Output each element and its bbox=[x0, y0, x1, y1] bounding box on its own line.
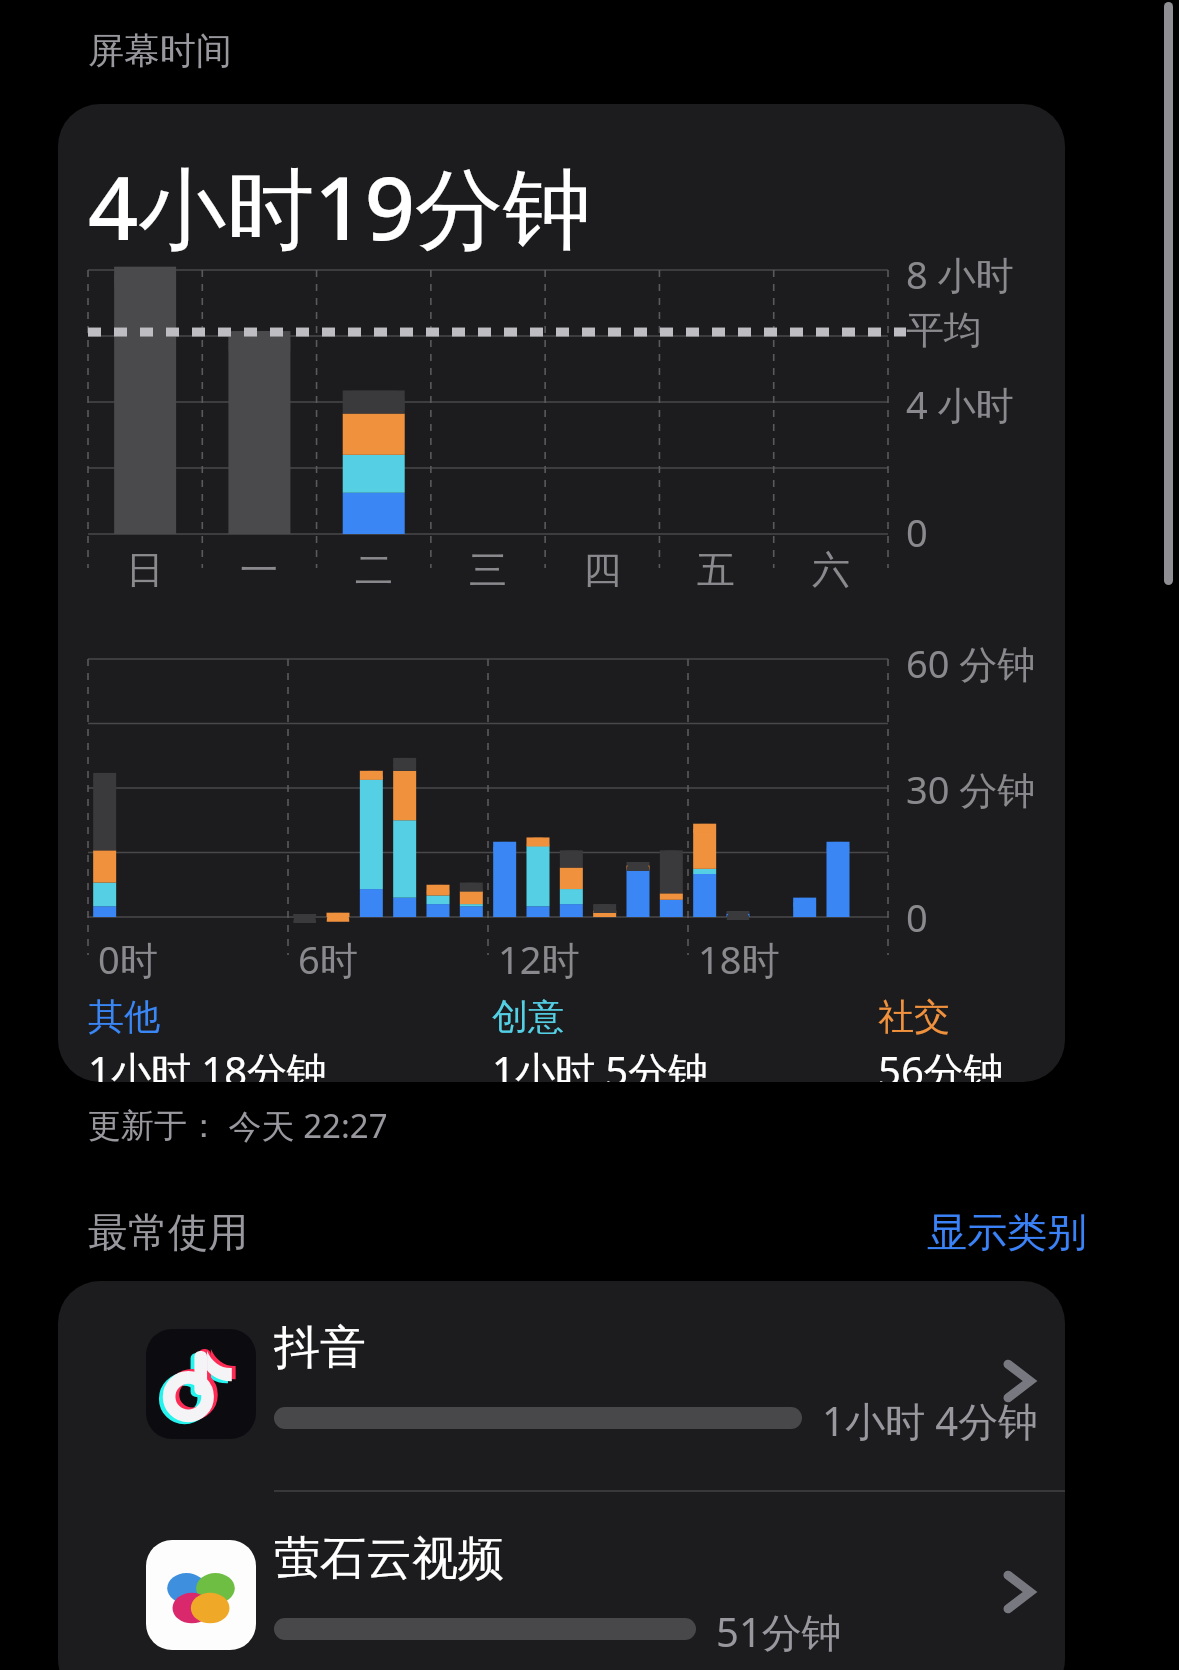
staticText: 日 bbox=[126, 546, 164, 594]
staticText: 屏幕时间 bbox=[88, 28, 232, 73]
staticText: 社交 bbox=[878, 994, 950, 1039]
staticText: 1小时 5分钟 bbox=[492, 1043, 709, 1082]
staticText: 二 bbox=[355, 546, 393, 594]
button[interactable]: 4小时19分钟 bbox=[58, 104, 1065, 1082]
staticText: 显示类别 bbox=[927, 1207, 1087, 1257]
staticText: 平均 bbox=[906, 306, 982, 354]
staticText: 0时 bbox=[98, 933, 158, 985]
staticText: 12时 bbox=[498, 933, 580, 985]
staticText: 其他 bbox=[88, 994, 160, 1039]
staticText: 六 bbox=[812, 546, 850, 594]
staticText: 8 小时 bbox=[906, 248, 1014, 300]
staticText: 1小时 18分钟 bbox=[88, 1043, 328, 1082]
button[interactable]: 萤石云视频 bbox=[58, 1492, 1065, 1670]
staticText: 51分钟 bbox=[716, 1604, 842, 1659]
staticText: 四 bbox=[583, 546, 621, 594]
staticText: 1小时 4分钟 bbox=[822, 1393, 1039, 1448]
staticText: 30 分钟 bbox=[906, 763, 1036, 815]
staticText: 创意 bbox=[492, 994, 564, 1039]
button[interactable]: 显示类别 bbox=[923, 1203, 1091, 1261]
staticText: 三 bbox=[469, 546, 507, 594]
button[interactable]: 抖音 bbox=[58, 1281, 1065, 1490]
other: 显示详情 bbox=[998, 1361, 1038, 1401]
staticText: 更新于： bbox=[88, 1105, 220, 1147]
staticText: 4小时19分钟 bbox=[88, 146, 592, 266]
staticText: 五 bbox=[697, 546, 735, 594]
staticText: 0 bbox=[906, 506, 928, 558]
staticText: 0 bbox=[906, 891, 928, 943]
staticText: 今天 22:27 bbox=[220, 1103, 388, 1148]
staticText: 一 bbox=[240, 546, 278, 594]
staticText: 最常使用 bbox=[88, 1207, 248, 1257]
staticText: 60 分钟 bbox=[906, 637, 1036, 689]
staticText: 萤石云视频 bbox=[274, 1530, 504, 1588]
staticText: 抖音 bbox=[274, 1319, 366, 1377]
staticText: 18时 bbox=[698, 933, 780, 985]
staticText: 4 小时 bbox=[906, 378, 1014, 430]
staticText: 56分钟 bbox=[878, 1043, 1004, 1082]
staticText: 6时 bbox=[298, 933, 358, 985]
other: 显示详情 bbox=[998, 1572, 1038, 1612]
